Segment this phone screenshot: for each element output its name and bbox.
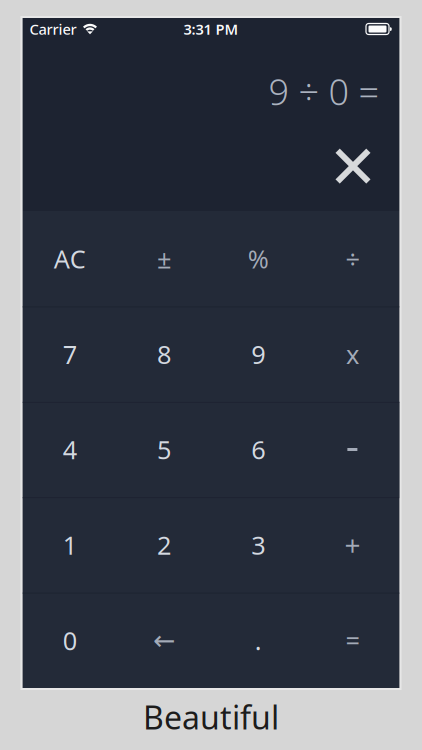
button[interactable]: + [305,497,399,593]
button[interactable]: 6 [211,402,305,497]
button[interactable]: 0 [22,593,117,688]
button[interactable]: 1 [22,497,117,593]
staticText: . [255,623,262,657]
button[interactable]: 5 [117,402,211,497]
staticText: 5 [157,433,171,466]
staticText: 1 [63,528,77,562]
staticText: 8 [157,337,171,371]
button[interactable]: 7 [22,306,117,402]
button[interactable]: 9 [211,306,305,402]
staticText: 6 [251,433,265,466]
button[interactable]: 3 [211,497,305,593]
button[interactable]: x [305,306,399,402]
staticText: Beautiful [143,696,279,738]
button[interactable]: = [305,593,399,688]
staticText: 3:31 PM [183,19,238,39]
staticText: 0 [63,623,77,657]
button[interactable]: ± [117,211,211,306]
staticText: + [344,526,360,563]
staticText: Carrier [29,19,76,39]
staticText: 4 [63,433,77,466]
staticText: = [345,623,359,657]
button[interactable]: ← [117,593,211,688]
button[interactable]: % [211,211,305,306]
staticText: ± [157,242,171,275]
staticText: x [346,337,359,371]
staticText: ÷ [345,242,359,275]
staticText: 2 [157,528,171,562]
staticText: AC [54,242,86,275]
button[interactable]: 8 [117,306,211,402]
button[interactable]: 2 [117,497,211,593]
staticText: 9 [251,337,265,371]
button[interactable]: 4 [22,402,117,497]
button[interactable]: Minus [305,402,399,497]
button[interactable]: AC [22,211,117,306]
staticText: % [248,242,269,275]
button[interactable]: . [211,593,305,688]
staticText: 9 ÷ 0 = [268,67,379,115]
staticText: 3 [251,528,265,562]
staticText: ← [153,625,175,655]
staticText: 7 [63,337,77,371]
button[interactable]: ÷ [305,211,399,306]
